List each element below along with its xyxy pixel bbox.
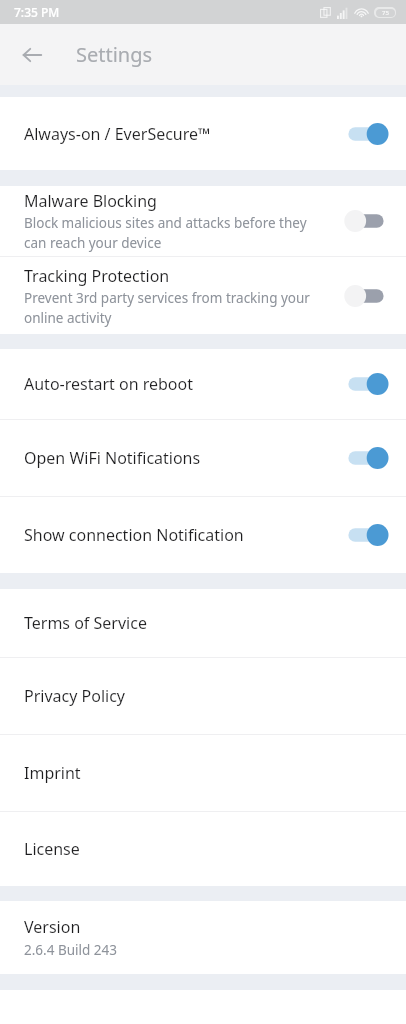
staticText: Block malicious sites and attacks before…	[24, 214, 307, 252]
button[interactable]: Back	[10, 33, 54, 77]
button[interactable]: Terms of Service	[0, 589, 406, 657]
button[interactable]: Version	[0, 901, 406, 974]
staticText: Auto-restart on reboot	[24, 373, 194, 395]
button[interactable]: Imprint	[0, 735, 406, 811]
staticText: Tracking Protection	[24, 265, 170, 287]
button[interactable]: Off	[346, 208, 386, 234]
button[interactable]: Privacy Policy	[0, 658, 406, 734]
staticText: 75	[382, 9, 389, 17]
button[interactable]: On	[346, 371, 386, 397]
button[interactable]: License	[0, 812, 406, 886]
staticText: Imprint	[24, 762, 81, 784]
staticText: Terms of Service	[24, 612, 147, 634]
staticText: License	[24, 838, 80, 860]
staticText: Prevent 3rd party services from tracking…	[24, 289, 310, 327]
staticText: 7:35 PM	[14, 4, 60, 20]
staticText: Version	[24, 916, 81, 938]
staticText: Privacy Policy	[24, 685, 125, 707]
staticText: 2.6.4 Build 243	[24, 941, 117, 959]
staticText: Always-on / EverSecure™	[24, 123, 211, 145]
button[interactable]: Show connection Notification	[0, 497, 406, 573]
button[interactable]: On	[346, 522, 386, 548]
button[interactable]: Always-on / EverSecure™	[0, 97, 406, 170]
button[interactable]: Tracking Protection	[0, 257, 406, 334]
button[interactable]: Open WiFi Notifications	[0, 420, 406, 496]
button[interactable]: On	[346, 121, 386, 147]
button[interactable]: Auto-restart on reboot	[0, 349, 406, 419]
staticText: Settings	[76, 41, 153, 68]
staticText: Malware Blocking	[24, 190, 157, 212]
button[interactable]: Off	[346, 283, 386, 309]
button[interactable]: Malware Blocking	[0, 186, 406, 256]
staticText: Open WiFi Notifications	[24, 447, 201, 469]
button[interactable]: On	[346, 445, 386, 471]
staticText: Show connection Notification	[24, 524, 244, 546]
